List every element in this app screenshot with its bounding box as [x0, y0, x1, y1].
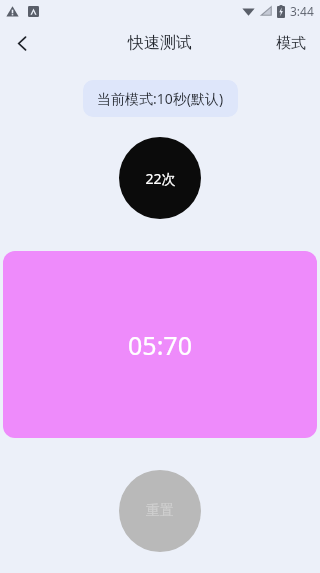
button[interactable]: 模式 [262, 24, 320, 63]
button[interactable]: 05:70 [3, 251, 317, 438]
button[interactable]: 当前模式:10秒(默认) [83, 80, 238, 117]
staticText: 重置 [146, 502, 174, 520]
staticText: 3:44 [290, 3, 314, 19]
staticText: 模式 [276, 34, 306, 53]
button[interactable]: 重置 [119, 470, 201, 552]
staticText: 22次 [145, 169, 176, 188]
staticText: 05:70 [128, 328, 192, 362]
button[interactable]: Back [0, 22, 44, 64]
staticText: 快速测试 [128, 33, 192, 53]
staticText: 当前模式:10秒(默认) [97, 89, 224, 108]
button[interactable]: 22次 [119, 137, 201, 219]
